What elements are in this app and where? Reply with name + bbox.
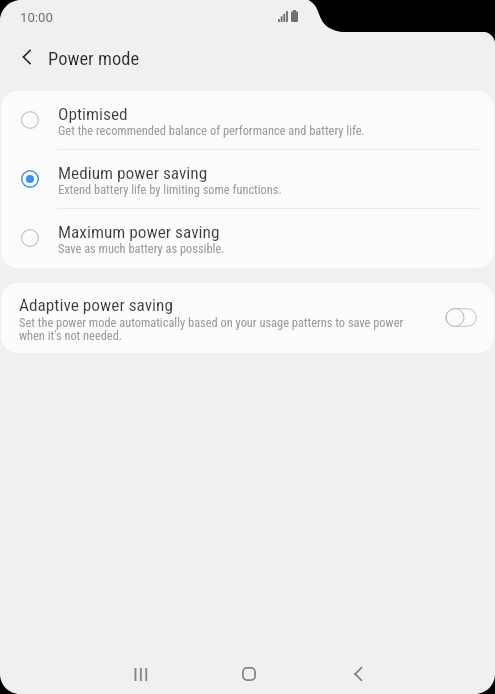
button[interactable]: Medium power saving <box>1 150 494 208</box>
staticText: 10:00 <box>20 10 53 25</box>
staticText: Medium power saving <box>58 163 208 183</box>
button[interactable]: Recent apps <box>117 650 165 694</box>
button[interactable]: Maximum power saving <box>1 209 494 267</box>
button[interactable]: Navigate up <box>10 41 42 73</box>
staticText: Save as much battery as possible. <box>58 241 225 256</box>
staticText: Set the power mode automatically based o… <box>19 315 409 343</box>
button[interactable]: Back <box>334 650 382 694</box>
button[interactable]: Home <box>225 650 273 694</box>
staticText: Maximum power saving <box>58 222 220 242</box>
button[interactable]: Adaptive power saving <box>1 283 494 353</box>
staticText: Adaptive power saving <box>19 295 173 315</box>
staticText: Optimised <box>58 104 128 124</box>
button[interactable]: Adaptive power saving toggle <box>444 307 478 328</box>
button[interactable]: Optimised <box>1 91 494 149</box>
staticText: Extend battery life by limiting some fun… <box>58 182 282 197</box>
staticText: Power mode <box>48 48 140 70</box>
staticText: Get the recommended balance of performan… <box>58 123 365 138</box>
